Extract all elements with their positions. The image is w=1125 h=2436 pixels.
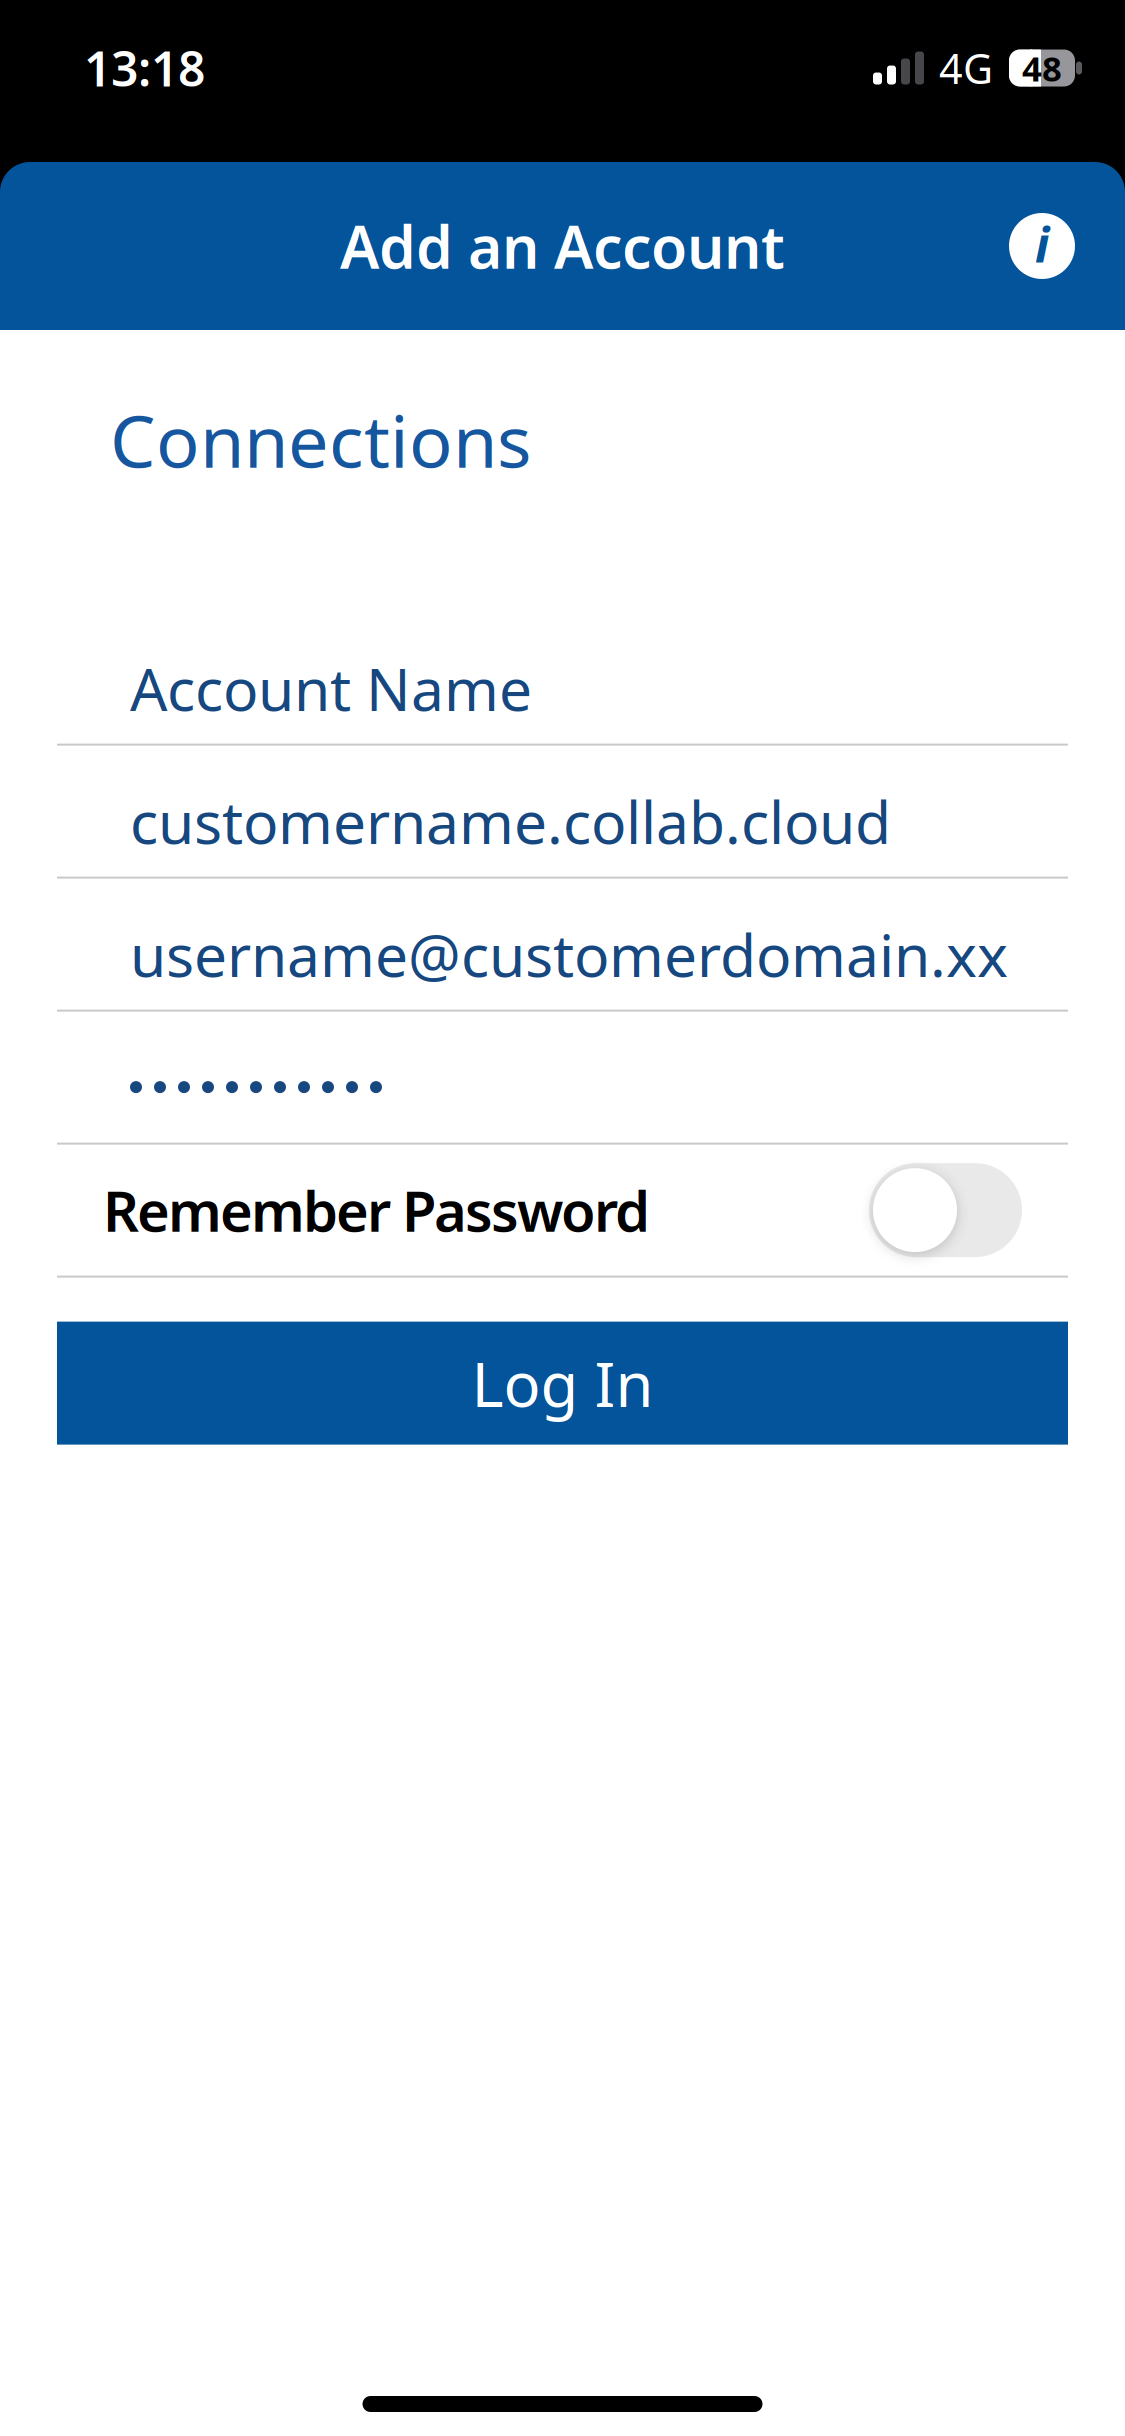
button[interactable]: Info (1009, 213, 1075, 279)
button[interactable]: Server Address (0, 746, 1125, 877)
staticText: Connections (110, 392, 531, 488)
staticText: Account Name (130, 649, 532, 727)
staticText: Log In (471, 1342, 653, 1424)
staticText: customername.collab.cloud (130, 782, 891, 860)
staticText: 48 (1022, 45, 1062, 91)
staticText: 4G (939, 41, 993, 95)
button[interactable]: Password (0, 1012, 1125, 1143)
button[interactable]: Remember Password (869, 1163, 1022, 1257)
staticText: 13:18 (84, 36, 205, 100)
staticText: i (1035, 212, 1049, 276)
staticText: Add an Account (340, 207, 785, 285)
button[interactable]: Username (0, 879, 1125, 1010)
button[interactable]: Log In (57, 1322, 1068, 1445)
staticText: username@customerdomain.xx (130, 915, 1008, 993)
staticText: Remember Password (103, 1173, 650, 1247)
button[interactable]: Account Name (0, 613, 1125, 744)
